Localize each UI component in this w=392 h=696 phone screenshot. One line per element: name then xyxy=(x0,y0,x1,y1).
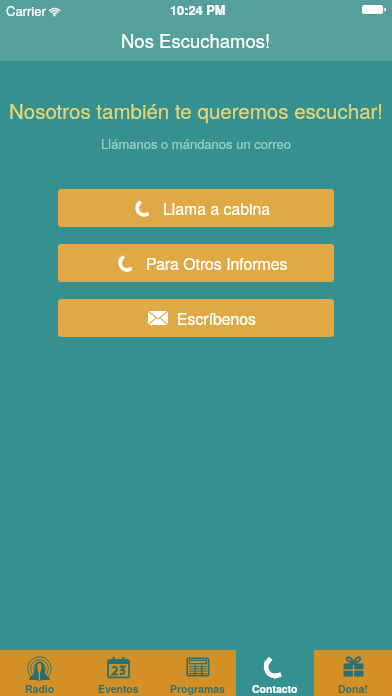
staticText: Radio xyxy=(25,681,55,696)
button[interactable]: Programas xyxy=(158,650,236,696)
button[interactable]: Eventos xyxy=(79,650,158,696)
staticText: Eventos xyxy=(98,681,139,696)
staticText: Para Otros Informes xyxy=(146,252,288,275)
staticText: 10:24 PM xyxy=(170,1,226,19)
button[interactable]: Escríbenos xyxy=(58,299,334,337)
button[interactable]: Dona! xyxy=(314,650,392,696)
staticText: Llámanos o mándanos un correo xyxy=(0,134,392,153)
staticText: Llama a cabina xyxy=(163,197,271,220)
staticText: Nos Escuchamos! xyxy=(121,27,271,53)
staticText: Dona! xyxy=(338,681,368,696)
button[interactable]: Llama a cabina xyxy=(58,189,334,227)
button[interactable]: Radio xyxy=(0,650,79,696)
staticText: Escríbenos xyxy=(177,307,257,330)
button[interactable]: Para Otros Informes xyxy=(58,244,334,282)
staticText: Contacto xyxy=(252,681,298,696)
staticText: Nosotros también te queremos escuchar! xyxy=(0,95,392,124)
staticText: Carrier xyxy=(6,1,46,20)
staticText: Programas xyxy=(170,681,225,696)
button[interactable]: Contacto xyxy=(236,650,314,696)
